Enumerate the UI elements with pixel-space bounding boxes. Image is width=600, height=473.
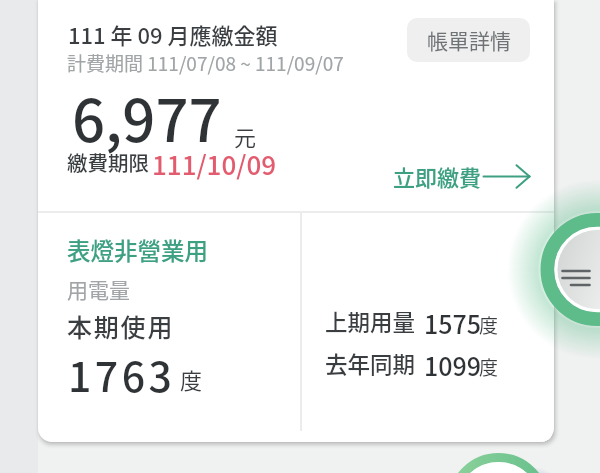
staticText: 繳費期限	[67, 147, 149, 177]
staticText: 用電量	[67, 274, 130, 304]
staticText: 1575	[424, 305, 482, 341]
staticText: 表燈非營業用	[67, 233, 208, 267]
button[interactable]: 立即繳費	[390, 155, 535, 199]
staticText: 111/10/09	[152, 145, 277, 183]
staticText: 1763	[68, 344, 176, 403]
staticText: 上期用量	[325, 305, 416, 338]
staticText: 度	[479, 311, 499, 339]
staticText: 元	[234, 120, 257, 152]
button[interactable]	[537, 209, 600, 329]
button[interactable]: 帳單詳情	[407, 18, 530, 62]
staticText: 立即繳費	[393, 160, 482, 192]
staticText: 度	[479, 353, 499, 381]
staticText: 6,977	[72, 75, 222, 159]
staticText: 去年同期	[325, 347, 416, 380]
staticText: 本期使用	[67, 308, 175, 344]
button[interactable]	[438, 444, 558, 473]
staticText: 度	[180, 363, 203, 395]
staticText: 111 年 09 月應繳金額	[68, 18, 278, 50]
staticText: 帳單詳情	[427, 25, 511, 55]
staticText: 計費期間 111/07/08 ~ 111/09/07	[67, 49, 344, 77]
staticText: 1099	[424, 347, 482, 383]
